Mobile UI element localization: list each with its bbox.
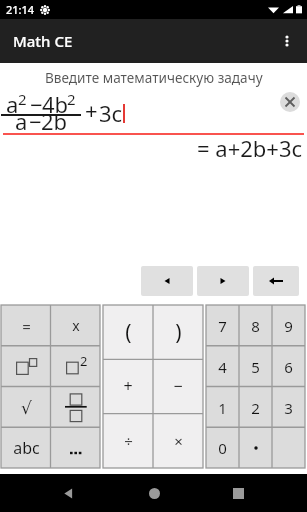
button[interactable] <box>239 427 272 468</box>
staticText: 2 <box>251 398 260 418</box>
button[interactable]: Back <box>52 477 84 509</box>
staticText: − <box>29 106 42 136</box>
staticText: 7 <box>218 316 227 336</box>
staticText: x <box>72 316 80 335</box>
staticText: 6 <box>284 357 293 377</box>
staticText: a <box>15 106 28 136</box>
button[interactable]: ( <box>103 305 153 359</box>
staticText: 1 <box>218 398 227 418</box>
button[interactable] <box>1 346 51 387</box>
staticText: ( <box>125 318 132 347</box>
button[interactable]: 5 <box>239 346 272 387</box>
button[interactable]: Backspace <box>253 266 299 296</box>
staticText: = <box>22 316 31 336</box>
button[interactable]: key <box>272 427 305 468</box>
staticText: ) <box>175 318 182 347</box>
button[interactable]: √ <box>1 387 51 428</box>
button[interactable]: Clear <box>280 92 300 112</box>
staticText: 9 <box>284 316 293 336</box>
staticText: 2 <box>67 89 76 109</box>
button[interactable]: × <box>153 414 203 468</box>
staticText: − <box>30 89 43 119</box>
staticText: × <box>174 431 183 451</box>
staticText: 4 <box>218 357 227 377</box>
staticText: abc <box>13 437 40 459</box>
button[interactable]: 0 <box>206 427 239 468</box>
button[interactable]: + <box>103 359 153 413</box>
staticText: √ <box>21 398 32 418</box>
button[interactable]: 2 <box>51 346 101 387</box>
staticText: 3c <box>99 98 123 128</box>
button[interactable]: ) <box>153 305 203 359</box>
staticText: 5 <box>251 357 260 377</box>
button[interactable]: 4 <box>206 346 239 387</box>
button[interactable]: abc <box>1 427 51 468</box>
button[interactable]: ÷ <box>103 414 153 468</box>
staticText: 0 <box>218 438 227 458</box>
staticText: 2b <box>41 106 68 136</box>
button[interactable]: Recents <box>222 477 254 509</box>
staticText: ÷ <box>124 431 133 451</box>
staticText: 3 <box>284 398 293 418</box>
button[interactable]: More options <box>267 21 307 61</box>
staticText: Math CE <box>13 31 73 51</box>
button[interactable] <box>51 427 101 468</box>
button[interactable]: 7 <box>206 305 239 346</box>
button[interactable]: Home <box>138 477 170 509</box>
button[interactable]: Move right <box>197 266 249 296</box>
staticText: 2 <box>80 352 88 369</box>
staticText: = a+2b+3c <box>197 133 303 163</box>
staticText: 2 <box>18 89 27 109</box>
button[interactable]: 8 <box>239 305 272 346</box>
button[interactable]: 2 <box>239 387 272 428</box>
button[interactable]: 6 <box>272 346 305 387</box>
button[interactable]: 9 <box>272 305 305 346</box>
button[interactable]: x <box>51 305 101 346</box>
staticText: 8 <box>251 316 260 336</box>
staticText: + <box>85 95 98 125</box>
button[interactable]: − <box>153 359 203 413</box>
staticText: Введите математическую задачу <box>45 68 263 87</box>
staticText: − <box>173 375 183 397</box>
staticText: + <box>123 375 133 397</box>
button[interactable]: Move left <box>141 266 193 296</box>
staticText: a <box>6 89 19 119</box>
button[interactable]: = <box>1 305 51 346</box>
button[interactable] <box>51 387 101 428</box>
button[interactable]: 3 <box>272 387 305 428</box>
button[interactable]: 1 <box>206 387 239 428</box>
staticText: 4b <box>42 89 69 119</box>
staticText: 21:14 <box>6 2 35 17</box>
